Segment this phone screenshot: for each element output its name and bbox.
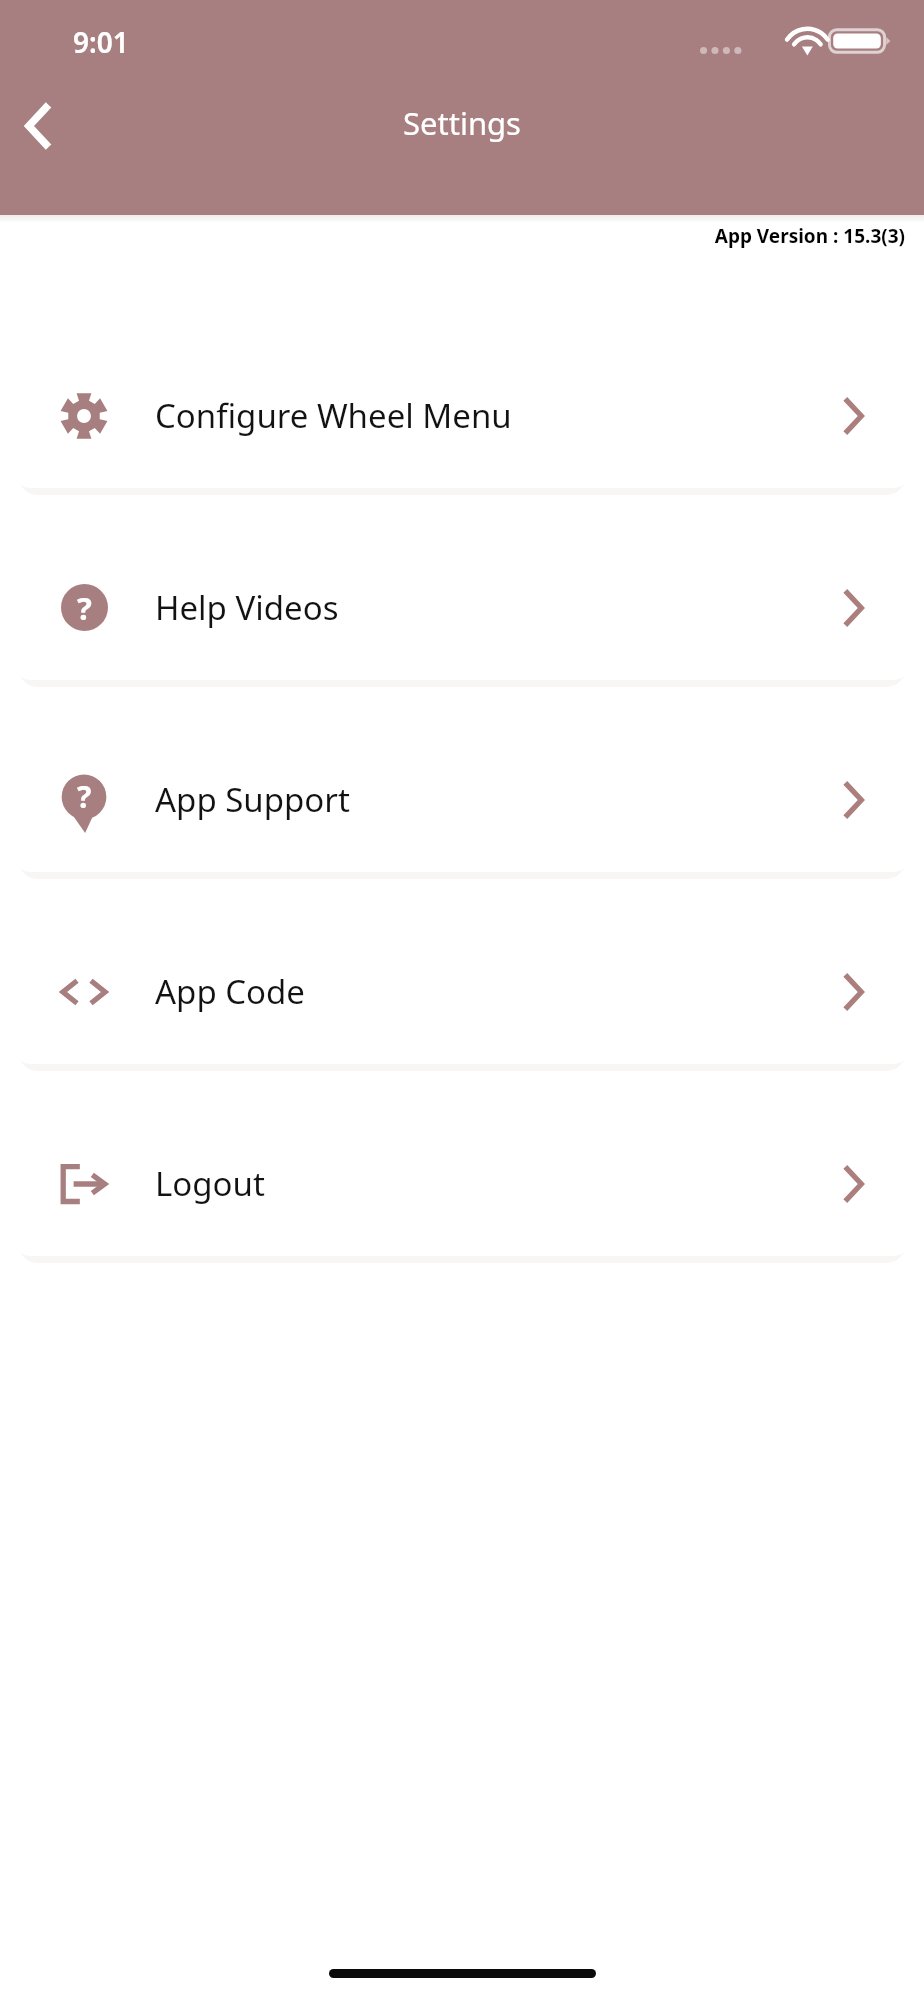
button[interactable]: App Code <box>13 919 911 1064</box>
staticText: App Code <box>155 969 795 1014</box>
staticText: ? <box>77 587 92 629</box>
staticText: Configure Wheel Menu <box>155 393 795 438</box>
button[interactable]: ? <box>13 535 911 680</box>
button[interactable]: Back <box>9 96 69 156</box>
staticText: 9:01 <box>73 23 129 61</box>
staticText: App Version : 15.3(3) <box>0 223 905 249</box>
staticText: ? <box>77 776 92 817</box>
staticText: Logout <box>155 1161 795 1206</box>
button[interactable]: Logout <box>13 1111 911 1256</box>
staticText: Help Videos <box>155 585 795 630</box>
staticText: App Support <box>155 777 795 822</box>
button[interactable]: ? <box>13 727 911 872</box>
staticText: Settings <box>403 102 521 144</box>
button[interactable]: Configure Wheel Menu <box>13 343 911 488</box>
